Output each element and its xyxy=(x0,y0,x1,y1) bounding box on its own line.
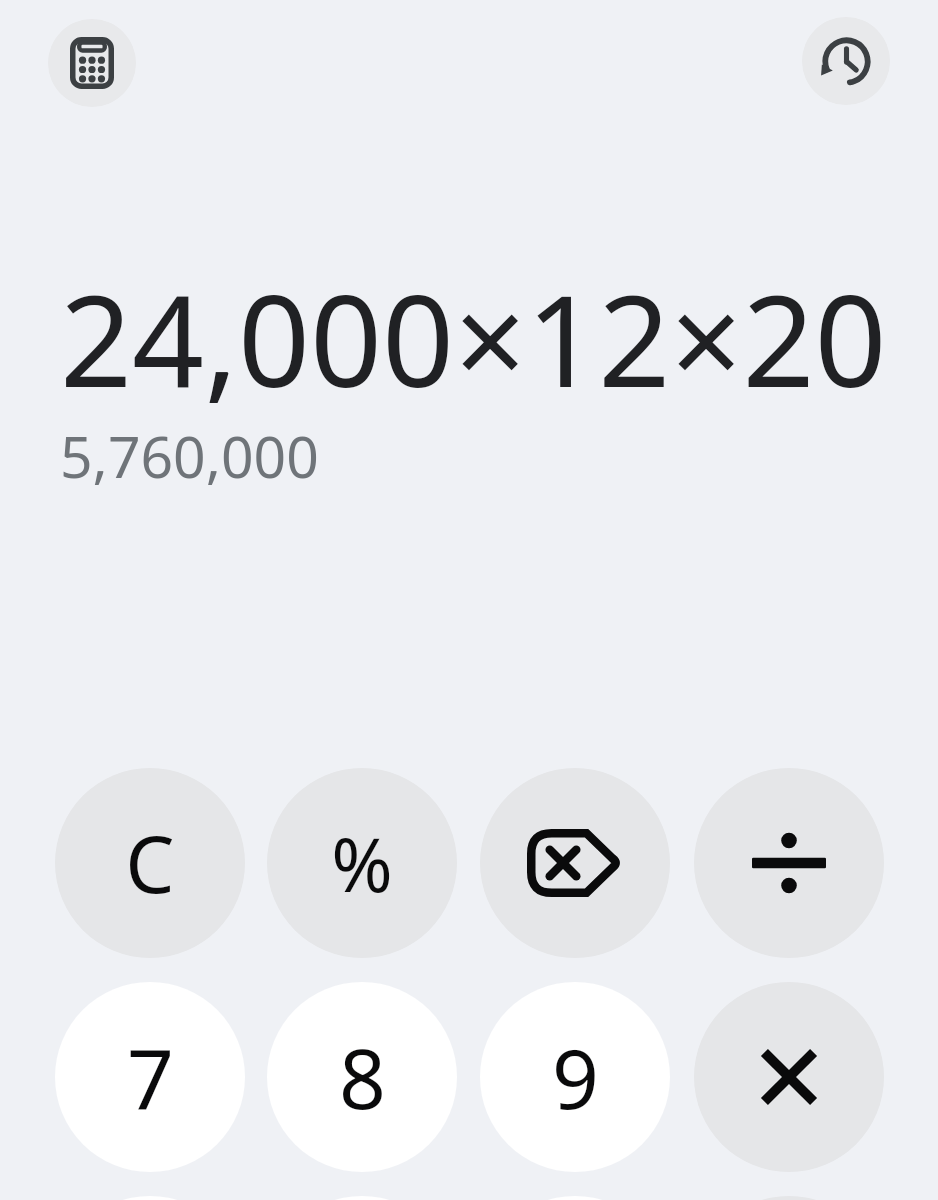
button[interactable]: % xyxy=(267,768,457,958)
button[interactable]: 24,000×12×20 xyxy=(60,252,887,424)
staticText: C xyxy=(125,810,175,916)
button[interactable]: Divide xyxy=(694,768,884,958)
button[interactable]: Calculator mode xyxy=(48,19,136,107)
button[interactable]: 5,760,000 xyxy=(60,417,319,495)
button[interactable]: 4 xyxy=(55,1196,245,1200)
staticText: 7 xyxy=(127,1021,174,1133)
button[interactable]: 6 xyxy=(480,1196,670,1200)
staticText: % xyxy=(331,813,393,914)
staticText: 24,000×12×20 xyxy=(60,252,887,424)
button[interactable]: 9 xyxy=(480,982,670,1172)
button[interactable]: Minus xyxy=(694,1196,884,1200)
staticText: 8 xyxy=(339,1021,386,1133)
button[interactable]: 7 xyxy=(55,982,245,1172)
button[interactable]: History xyxy=(802,17,890,105)
button[interactable]: 5 xyxy=(267,1196,457,1200)
button[interactable]: C xyxy=(55,768,245,958)
button[interactable]: Multiply xyxy=(694,982,884,1172)
button[interactable]: 8 xyxy=(267,982,457,1172)
staticText: 5,760,000 xyxy=(60,417,319,495)
staticText: 9 xyxy=(552,1021,599,1133)
button[interactable]: Backspace xyxy=(480,768,670,958)
